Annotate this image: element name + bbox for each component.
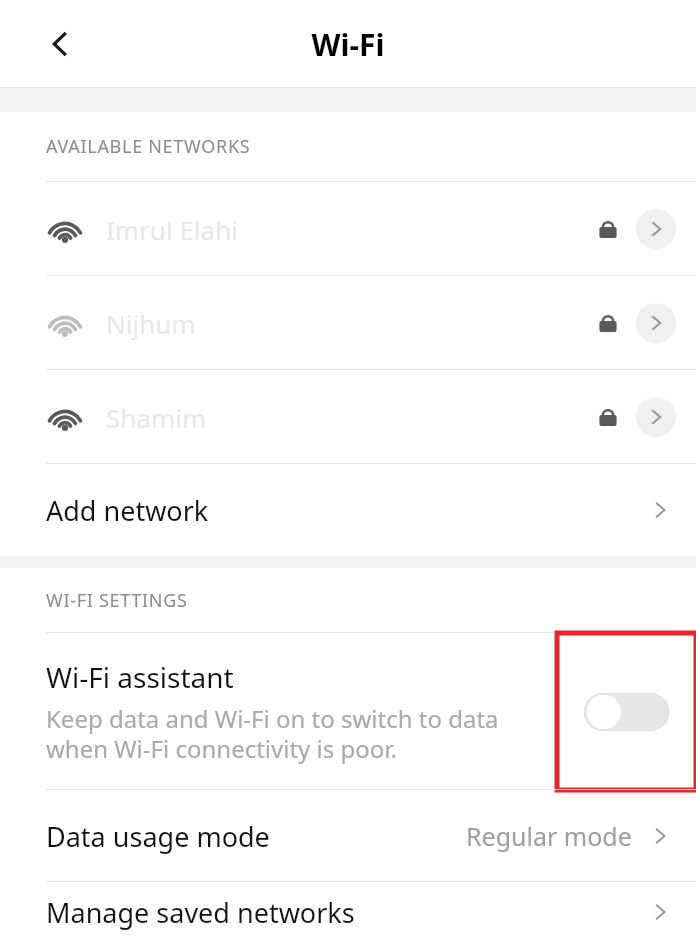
staticText: Add network — [46, 492, 209, 529]
button[interactable]: Nijhum — [0, 276, 696, 370]
staticText: Wi-Fi — [311, 24, 385, 65]
button[interactable]: Back — [38, 21, 84, 67]
staticText: Regular mode — [466, 819, 632, 853]
staticText: WI-FI SETTINGS — [46, 588, 188, 613]
staticText: Keep data and Wi-Fi on to switch to data… — [46, 702, 547, 765]
staticText: Nijhum — [106, 306, 598, 341]
button[interactable]: Shamim — [0, 370, 696, 464]
button[interactable]: Data usage mode — [0, 790, 696, 882]
button[interactable]: Add network — [0, 464, 696, 556]
button[interactable]: Manage saved networks — [0, 882, 696, 942]
staticText: Shamim — [106, 400, 598, 435]
button[interactable]: Imrul Elahi — [0, 182, 696, 276]
staticText: Wi-Fi assistant — [46, 658, 234, 696]
button[interactable]: Network details — [636, 303, 676, 343]
button[interactable]: Wi-Fi assistant — [0, 633, 696, 790]
staticText: AVAILABLE NETWORKS — [46, 134, 251, 159]
staticText: Manage saved networks — [46, 894, 355, 931]
staticText: Imrul Elahi — [106, 212, 598, 247]
button[interactable]: Network details — [636, 397, 676, 437]
button[interactable]: Network details — [636, 209, 676, 249]
button[interactable]: Wi-Fi assistant toggle — [557, 633, 696, 790]
staticText: Data usage mode — [46, 818, 270, 855]
